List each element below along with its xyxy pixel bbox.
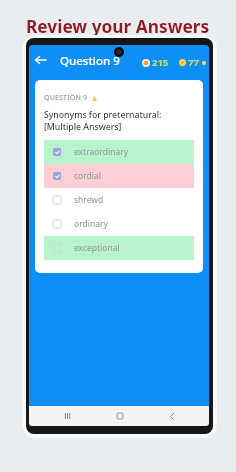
button[interactable]: Coins and gems (142, 56, 206, 69)
staticText: ordinary (74, 218, 108, 230)
staticText: exceptional (74, 242, 120, 254)
staticText: QUESTION 9 (44, 93, 88, 103)
staticText: 215 (152, 56, 169, 69)
button[interactable]: Back (32, 52, 48, 68)
staticText: extraordinary (74, 146, 129, 158)
staticText: Review your Answers (26, 15, 210, 39)
button[interactable]: Back (164, 408, 180, 424)
button[interactable]: cordial (44, 164, 194, 188)
staticText: cordial (74, 170, 101, 182)
button[interactable]: exceptional (44, 236, 194, 260)
button[interactable]: shrewd (44, 188, 194, 212)
staticText: 77 (188, 56, 199, 69)
staticText: Question 9 (60, 53, 120, 69)
button[interactable]: Home (112, 408, 128, 424)
button[interactable]: Recent apps (59, 408, 75, 424)
button[interactable]: extraordinary (44, 140, 194, 164)
staticText: Synonyms for preternatural: [Multiple An… (44, 109, 162, 132)
button[interactable]: ordinary (44, 212, 194, 236)
staticText: shrewd (74, 194, 104, 206)
